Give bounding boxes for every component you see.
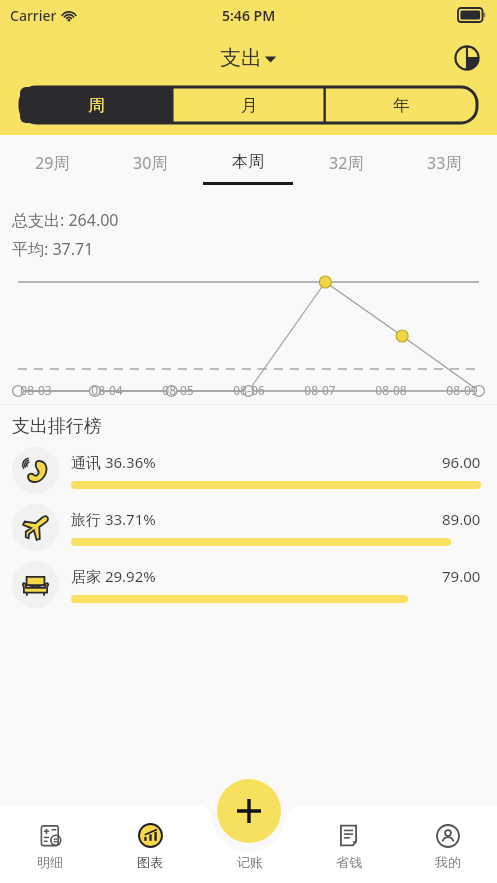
staticText: 省钱 — [336, 854, 362, 870]
button[interactable]: 省钱 — [299, 811, 398, 883]
staticText: 记账 — [237, 854, 263, 870]
button[interactable]: 记账 — [200, 811, 299, 883]
button[interactable]: 通讯 36.36% — [0, 442, 497, 499]
staticText: 月 — [241, 95, 258, 116]
staticText: 总支出: 264.00 — [12, 209, 119, 231]
button[interactable]: 29周 — [4, 135, 101, 197]
button[interactable]: 我的 — [398, 811, 497, 883]
staticText: 5:46 PM — [222, 6, 276, 25]
staticText: Carrier — [10, 6, 57, 25]
staticText: 08-07 — [304, 382, 336, 398]
button[interactable]: Add record — [217, 779, 281, 843]
staticText: 年 — [393, 95, 410, 116]
button[interactable]: 明细 — [0, 811, 100, 883]
staticText: 96.00 — [442, 452, 481, 472]
button[interactable]: 周 — [20, 87, 173, 123]
staticText: 30周 — [133, 152, 168, 174]
staticText: 79.00 — [442, 566, 481, 586]
staticText: 居家 29.92% — [71, 566, 442, 586]
button[interactable]: 旅行 33.71% — [0, 499, 497, 556]
staticText: 支出 — [220, 45, 262, 71]
staticText: 33周 — [427, 152, 462, 174]
staticText: 08-04 — [91, 382, 123, 398]
staticText: 08-06 — [233, 382, 265, 398]
button[interactable]: 月 — [173, 87, 325, 123]
button[interactable]: 支出 — [220, 45, 277, 71]
staticText: 旅行 33.71% — [71, 509, 442, 529]
button[interactable]: 居家 29.92% — [0, 556, 497, 613]
staticText: 明细 — [37, 854, 63, 870]
staticText: 本周 — [232, 152, 264, 172]
button[interactable]: 年 — [325, 87, 477, 123]
staticText: 08-09 — [446, 382, 478, 398]
button[interactable]: 33周 — [395, 135, 493, 197]
staticText: 29周 — [35, 152, 70, 174]
staticText: 我的 — [435, 854, 461, 870]
staticText: 08-08 — [375, 382, 407, 398]
button[interactable]: Pie chart view — [449, 40, 485, 76]
button[interactable]: 32周 — [297, 135, 395, 197]
staticText: 通讯 36.36% — [71, 452, 442, 472]
staticText: 周 — [88, 95, 105, 116]
staticText: 支出排行榜 — [12, 415, 102, 438]
button[interactable]: 30周 — [101, 135, 199, 197]
staticText: 平均: 37.71 — [12, 238, 94, 260]
staticText: 32周 — [329, 152, 364, 174]
button[interactable]: 本周 — [199, 135, 297, 197]
staticText: 89.00 — [442, 509, 481, 529]
staticText: 08-05 — [162, 382, 194, 398]
button[interactable]: 图表 — [100, 811, 200, 883]
staticText: 08-03 — [20, 382, 52, 398]
staticText: 图表 — [137, 854, 163, 870]
